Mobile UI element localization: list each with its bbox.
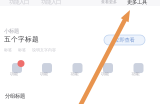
button[interactable]: 功能: [59, 57, 89, 78]
button[interactable]: 查看更多: [101, 0, 117, 4]
button[interactable]: 功能: [0, 57, 29, 78]
button[interactable]: 立即查看: [104, 35, 145, 45]
staticText: 分组标题: [5, 93, 25, 99]
staticText: 查看更多: [101, 0, 117, 4]
staticText: 立即查看: [114, 37, 134, 43]
staticText: 功能: [101, 71, 109, 76]
staticText: 功能: [131, 71, 139, 76]
button[interactable]: 功能入口: [41, 0, 61, 5]
button[interactable]: 功能入口: [9, 0, 29, 5]
staticText: 标签: [18, 47, 26, 52]
staticText: 功能入口: [41, 0, 61, 5]
staticText: 功能: [70, 71, 78, 76]
staticText: 小标题: [4, 28, 19, 34]
staticText: 更多工具: [127, 0, 147, 5]
staticText: 标签: [4, 47, 12, 52]
staticText: 说明文字内容: [32, 47, 56, 52]
staticText: 五个字标题: [4, 35, 39, 43]
button[interactable]: 功能: [120, 57, 150, 78]
button[interactable]: 功能: [29, 57, 59, 78]
staticText: 功能入口: [9, 0, 29, 5]
button[interactable]: 更多工具: [127, 0, 147, 5]
staticText: 功能: [40, 71, 48, 76]
staticText: 功能: [10, 71, 18, 76]
button[interactable]: 功能: [90, 57, 120, 78]
